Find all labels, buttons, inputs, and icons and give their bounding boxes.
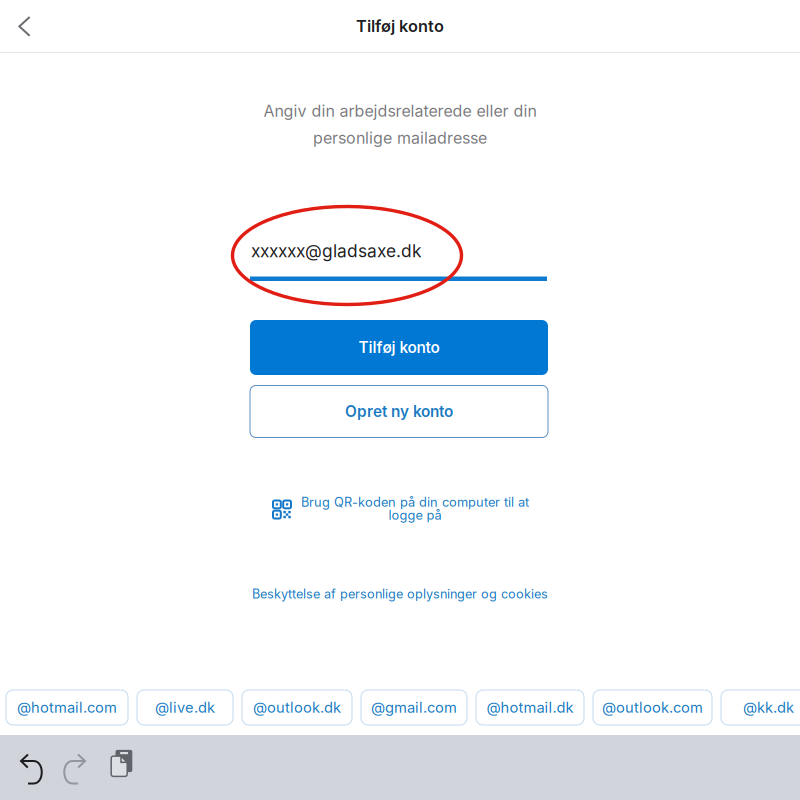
staticText: Angiv din arbejdsrelaterede eller din: [263, 101, 536, 121]
button[interactable]: @hotmail.com: [6, 690, 128, 725]
button[interactable]: Beskyttelse af personlige oplysninger og…: [252, 581, 548, 607]
button[interactable]: Back: [0, 0, 49, 52]
button[interactable]: Undo: [7, 746, 53, 792]
button[interactable]: @outlook.com: [593, 690, 712, 725]
button[interactable]: @hotmail.dk: [476, 690, 584, 725]
staticText: @outlook.dk: [253, 699, 341, 716]
staticText: personlige mailadresse: [313, 128, 487, 148]
button[interactable]: @outlook.dk: [242, 690, 352, 725]
staticText: xxxxxx@gladsaxe.dk: [251, 240, 422, 261]
button[interactable]: @kk.dk: [721, 690, 800, 725]
button[interactable]: Tilføj konto: [250, 320, 548, 375]
staticText: @kk.dk: [743, 699, 794, 716]
button[interactable]: @live.dk: [137, 690, 233, 725]
staticText: @gmail.com: [371, 699, 457, 716]
staticText: @live.dk: [155, 699, 215, 716]
button[interactable]: Opret ny konto: [250, 385, 548, 437]
button[interactable]: Redo: [52, 746, 98, 792]
staticText: logge på: [388, 507, 441, 523]
staticText: Tilføj konto: [358, 338, 439, 357]
button[interactable]: E-mail address: [250, 233, 547, 281]
button[interactable]: @gmail.com: [361, 690, 467, 725]
staticText: Opret ny konto: [345, 402, 453, 421]
staticText: Tilføj konto: [356, 16, 444, 36]
button[interactable]: Paste: [98, 740, 144, 786]
button[interactable]: Brug QR-koden på din computer til at: [270, 487, 550, 531]
staticText: @outlook.com: [602, 699, 703, 716]
staticText: @hotmail.dk: [486, 699, 573, 716]
staticText: @hotmail.com: [17, 699, 117, 716]
staticText: Brug QR-koden på din computer til at: [301, 494, 529, 510]
staticText: Beskyttelse af personlige oplysninger og…: [252, 586, 548, 602]
